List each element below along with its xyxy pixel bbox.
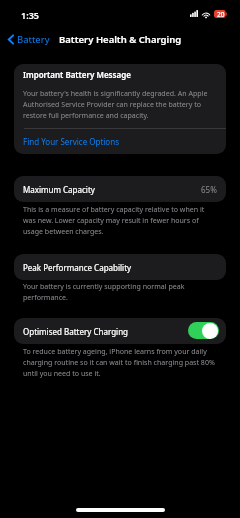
staticText: Important Battery Message bbox=[23, 69, 131, 80]
staticText: Battery bbox=[17, 33, 50, 46]
staticText: Your battery is currently supporting nor… bbox=[23, 281, 217, 302]
staticText: Battery Health & Charging bbox=[59, 33, 182, 46]
staticText: 65% bbox=[201, 184, 217, 195]
button[interactable]: Maximum Capacity bbox=[14, 176, 226, 202]
button[interactable]: Find Your Service Options bbox=[14, 129, 226, 154]
staticText: Peak Performance Capability bbox=[23, 262, 132, 273]
staticText: Maximum Capacity bbox=[23, 184, 95, 195]
staticText: 1:35 bbox=[21, 9, 39, 21]
staticText: Find Your Service Options bbox=[23, 136, 119, 147]
button[interactable]: Optimised Battery Charging toggle bbox=[188, 322, 219, 339]
staticText: 20 bbox=[217, 10, 225, 18]
staticText: This is a measure of battery capacity re… bbox=[23, 204, 217, 236]
staticText: To reduce battery ageing, iPhone learns … bbox=[23, 346, 217, 378]
button[interactable]: Battery bbox=[0, 31, 56, 48]
staticText: Optimised Battery Charging bbox=[23, 326, 129, 337]
staticText: Your battery's health is significantly d… bbox=[23, 88, 217, 120]
